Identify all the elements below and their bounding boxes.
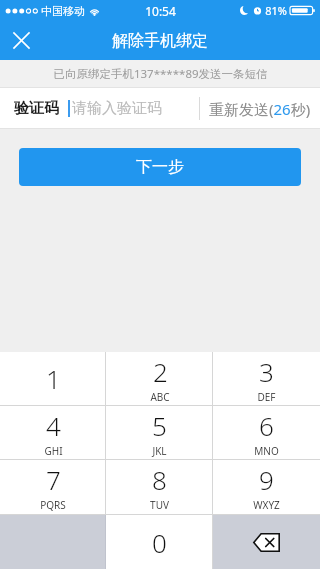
staticText: MNO (254, 444, 279, 458)
button[interactable]: 3 (213, 352, 320, 405)
staticText: WXYZ (253, 498, 280, 512)
staticText: 下一步 (136, 157, 184, 177)
button[interactable]: 重新发送(26秒) (200, 88, 320, 129)
button[interactable]: Close (0, 21, 42, 60)
staticText: 8 (152, 462, 167, 497)
staticText: 请输入验证码 (72, 99, 162, 118)
staticText: TUV (150, 498, 169, 512)
staticText: 中国移动 (41, 4, 85, 18)
staticText: GHI (44, 444, 63, 458)
staticText: 验证码 (14, 99, 59, 118)
button[interactable]: 8 (106, 460, 213, 514)
staticText: DEF (257, 390, 276, 404)
button[interactable]: 4 (0, 406, 106, 459)
staticText: JKL (152, 444, 167, 458)
staticText: 10:54 (145, 3, 176, 19)
button[interactable]: 5 (106, 406, 213, 459)
button[interactable]: 7 (0, 460, 106, 514)
button[interactable]: Backspace (213, 515, 320, 569)
staticText: 5 (152, 408, 167, 443)
staticText: PQRS (40, 498, 66, 512)
staticText: 4 (46, 408, 61, 443)
staticText: ABC (150, 390, 170, 404)
button[interactable]: 下一步 (19, 148, 301, 186)
button[interactable]: 0 (106, 515, 213, 569)
button[interactable]: 9 (213, 460, 320, 514)
button[interactable]: 请输入验证码 (72, 88, 199, 129)
staticText: 0 (152, 525, 167, 560)
staticText: 3 (259, 354, 274, 389)
staticText: 9 (259, 462, 274, 497)
staticText: 解除手机绑定 (112, 31, 208, 51)
staticText: 6 (259, 408, 274, 443)
staticText: 1 (46, 361, 61, 396)
staticText: 2 (153, 354, 168, 389)
button[interactable]: 6 (213, 406, 320, 459)
button[interactable]: 2 (106, 352, 213, 405)
staticText: 7 (46, 462, 61, 497)
staticText: 重新发送(26秒) (209, 99, 311, 119)
staticText: 已向原绑定手机137*****89发送一条短信 (53, 66, 268, 82)
staticText: 81% (265, 3, 287, 18)
button[interactable]: 1 (0, 352, 106, 405)
